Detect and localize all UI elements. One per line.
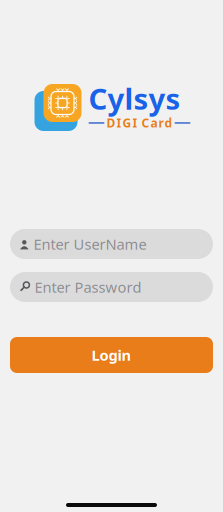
staticText: Enter UserName [34, 234, 147, 254]
staticText: Cylsys [88, 79, 180, 118]
button[interactable]: Login [10, 337, 213, 373]
staticText: Enter Password [34, 277, 141, 297]
button[interactable]: Enter UserName [10, 229, 213, 259]
button[interactable]: Enter Password [10, 272, 213, 302]
staticText: Login [91, 345, 131, 365]
staticText: D I G I C a r d [106, 115, 172, 131]
